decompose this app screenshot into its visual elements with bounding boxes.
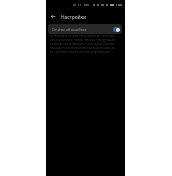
staticText: Отправлять отчёты об ошибках и статистик… xyxy=(50,34,119,54)
staticText: Настройки xyxy=(61,14,87,21)
staticText: Отчёты об ошибках xyxy=(52,27,87,32)
button[interactable]: Back xyxy=(48,12,57,21)
button[interactable]: Отчёты об ошибках xyxy=(48,24,122,34)
